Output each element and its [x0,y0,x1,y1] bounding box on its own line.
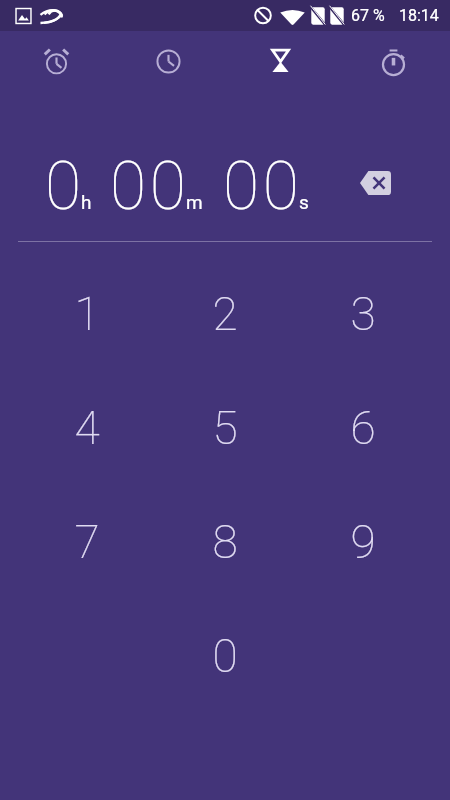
staticText: 8 [212,515,238,569]
button[interactable]: Clock [112,31,224,91]
staticText: 0 [212,629,238,683]
button[interactable]: 3 [294,257,432,371]
button[interactable]: Alarm [0,31,112,91]
staticText: 0 [45,148,85,225]
button[interactable]: Stopwatch [337,31,450,91]
button[interactable]: 1 [18,257,156,371]
staticText: 1 [74,287,100,341]
button[interactable]: Timer [224,31,337,91]
button[interactable]: 0 [156,599,294,713]
staticText: 00 [110,148,190,225]
staticText: h [81,191,92,213]
button[interactable]: Delete [353,161,397,205]
button[interactable]: 9 [294,485,432,599]
staticText: 00 [223,148,303,225]
staticText: 18:14 [399,6,439,25]
staticText: 5 [212,401,238,455]
button[interactable]: 7 [18,485,156,599]
button[interactable]: 4 [18,371,156,485]
button[interactable]: 5 [156,371,294,485]
staticText: 6 [350,401,376,455]
staticText: 2 [212,287,238,341]
staticText: 3 [350,287,376,341]
staticText: 7 [74,515,100,569]
button[interactable]: 6 [294,371,432,485]
staticText: 9 [350,515,376,569]
staticText: m [186,191,203,213]
staticText: 67 % [351,6,385,25]
button[interactable]: 2 [156,257,294,371]
staticText: 4 [74,401,100,455]
button[interactable]: 8 [156,485,294,599]
staticText: s [299,191,309,213]
